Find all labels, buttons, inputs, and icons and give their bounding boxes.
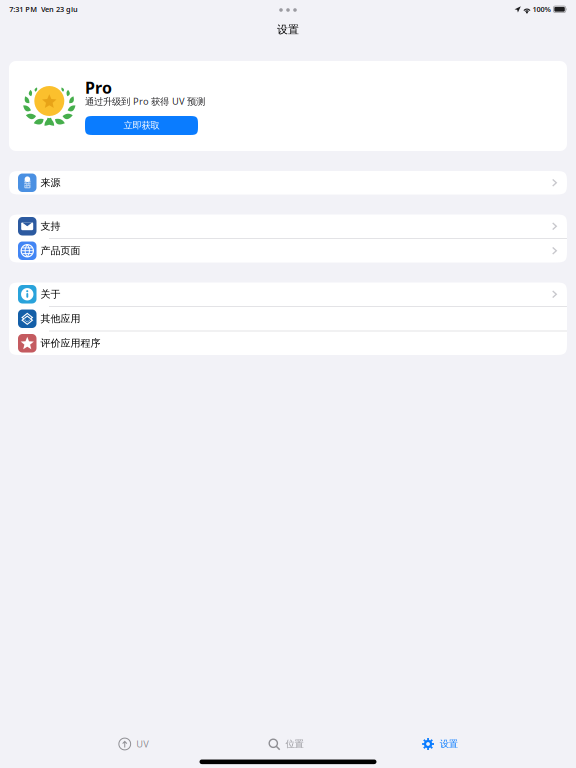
staticText: Ven 23 giu [41, 4, 78, 14]
button[interactable]: 位置 [267, 737, 303, 751]
button[interactable]: 关于 [9, 282, 567, 306]
button[interactable]: 其他应用 [9, 307, 567, 330]
button[interactable]: 产品页面 [9, 239, 567, 262]
staticText: Pro [85, 77, 112, 98]
button[interactable]: 设置 [422, 737, 458, 751]
staticText: 支持 [40, 220, 60, 232]
button[interactable]: 立即获取 [85, 116, 198, 135]
staticText: UV [136, 738, 149, 750]
staticText: 来源 [40, 177, 60, 189]
staticText: 100% [532, 4, 550, 14]
staticText: 设置 [277, 23, 299, 36]
button[interactable]: 来源 [9, 171, 567, 194]
staticText: 评价应用程序 [40, 337, 100, 349]
button[interactable]: 评价应用程序 [9, 331, 567, 355]
staticText: 产品页面 [40, 245, 80, 257]
staticText: 立即获取 [123, 120, 159, 131]
staticText: 位置 [285, 738, 303, 750]
button[interactable]: 支持 [9, 214, 567, 238]
staticText: 通过升级到 Pro 获得 UV 预测 [85, 95, 205, 107]
button[interactable]: UV [118, 737, 149, 751]
staticText: 7:31 PM [9, 4, 37, 14]
staticText: 设置 [440, 738, 458, 750]
staticText: 其他应用 [40, 313, 80, 325]
staticText: 关于 [40, 288, 60, 300]
